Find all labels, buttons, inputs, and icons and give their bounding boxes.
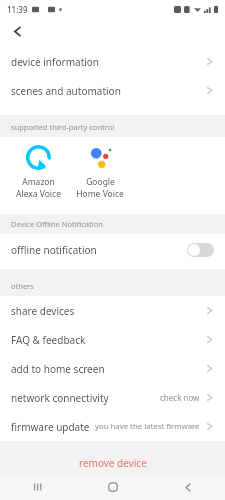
button[interactable]: FAQ & feedback [0,325,225,354]
staticText: check now [160,392,200,403]
staticText: Home Voice [76,188,124,200]
staticText: share devices [11,304,75,318]
button[interactable]: add to home screen [0,354,225,383]
button[interactable]: Back [150,474,225,500]
button[interactable]: Recent apps [0,474,75,500]
button[interactable]: remove device [0,453,225,473]
button[interactable]: Back [4,18,30,44]
button[interactable]: Amazon [7,137,69,200]
button[interactable]: share devices [0,296,225,325]
button[interactable]: device information [0,47,225,76]
staticText: you have the latest firmware [95,421,200,432]
staticText: Google [86,176,115,188]
button[interactable]: network connectivity [0,383,225,412]
staticText: supported third-party control [11,122,115,132]
button[interactable]: offline notification [0,234,225,265]
staticText: network connectivity [11,391,109,405]
staticText: Alexa Voice [16,188,61,200]
button[interactable]: Home [75,474,150,500]
staticText: firmware update [11,420,90,434]
staticText: device information [11,55,100,69]
staticText: Amazon [22,176,55,188]
staticText: FAQ & feedback [11,333,86,347]
staticText: Device Offline Notification [11,219,103,229]
staticText: 11:39 [7,4,28,15]
button[interactable]: firmware update [0,412,225,441]
staticText: remove device [79,456,147,470]
staticText: offline notification [11,243,97,257]
staticText: others [11,281,34,291]
button[interactable]: scenes and automation [0,76,225,105]
staticText: add to home screen [11,362,105,376]
staticText: scenes and automation [11,84,121,98]
button[interactable]: Google [69,137,131,200]
